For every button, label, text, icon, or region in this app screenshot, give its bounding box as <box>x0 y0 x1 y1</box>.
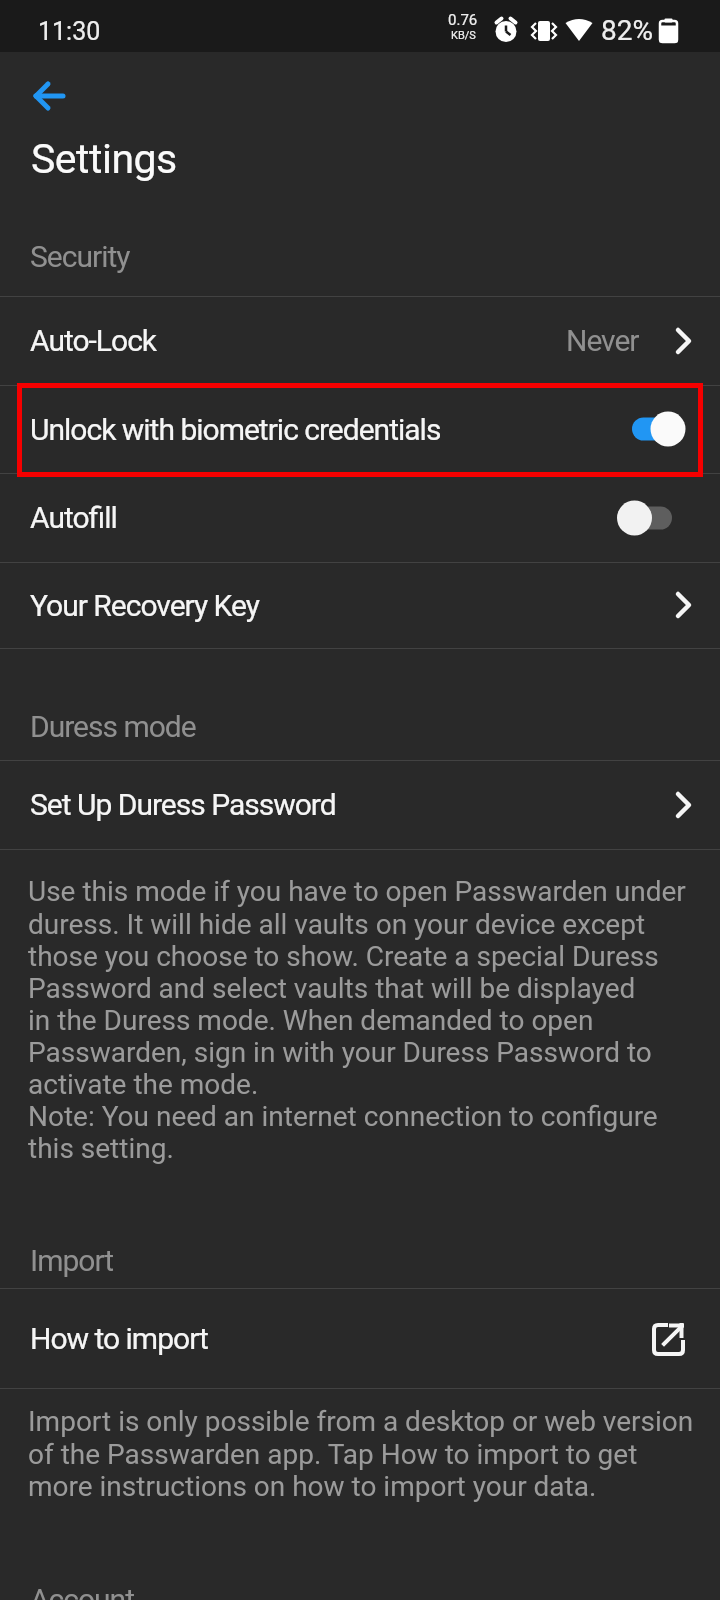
staticText: Import <box>30 1243 114 1278</box>
button[interactable]: Auto-Lock <box>0 296 720 385</box>
staticText: Account <box>30 1582 135 1600</box>
staticText: Never <box>566 323 639 358</box>
staticText: Duress mode <box>30 709 196 744</box>
button[interactable]: How to import <box>0 1288 720 1388</box>
button[interactable]: Your Recovery Key <box>0 562 720 648</box>
staticText: 0.76 <box>448 11 478 29</box>
button[interactable]: Set Up Duress Password <box>0 760 720 849</box>
staticText: Set Up Duress Password <box>30 787 336 822</box>
staticText: Autofill <box>30 500 117 535</box>
staticText: How to import <box>30 1321 208 1356</box>
staticText: Use this mode if you have to open Passwa… <box>28 875 686 1165</box>
staticText: Security <box>30 239 130 274</box>
staticText: 11:30 <box>38 17 101 46</box>
staticText: Settings <box>31 135 177 183</box>
staticText: KB/S <box>451 29 476 42</box>
button[interactable] <box>27 74 71 118</box>
staticText: 82% <box>601 14 653 47</box>
button[interactable]: Unlock with biometric credentials <box>0 385 720 473</box>
button[interactable]: Autofill <box>0 473 720 562</box>
staticText: Your Recovery Key <box>30 588 259 623</box>
staticText: Auto-Lock <box>30 323 157 358</box>
staticText: Import is only possible from a desktop o… <box>28 1405 694 1503</box>
staticText: Unlock with biometric credentials <box>30 412 441 447</box>
